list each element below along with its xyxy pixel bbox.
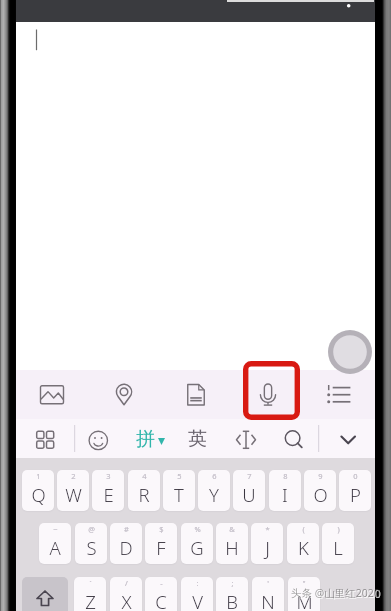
staticText: 4: [142, 471, 147, 481]
staticText: L: [333, 535, 343, 560]
staticText: S: [86, 535, 97, 560]
staticText: G: [190, 535, 204, 560]
button[interactable]: ): [322, 523, 354, 564]
staticText: K: [298, 535, 309, 560]
button[interactable]: (: [287, 523, 319, 564]
button[interactable]: 6: [198, 470, 230, 511]
button[interactable]: 9: [304, 470, 336, 511]
button[interactable]: &: [216, 523, 248, 564]
staticText: ': [267, 578, 269, 588]
staticText: R: [138, 482, 150, 507]
button[interactable]: 5: [163, 470, 195, 511]
staticText: H: [225, 535, 239, 560]
staticText: 英: [188, 427, 207, 451]
staticText: N: [261, 589, 275, 611]
staticText: $: [159, 524, 164, 534]
staticText: 6: [212, 471, 217, 481]
staticText: 头条 @山里红2020: [292, 587, 381, 601]
staticText: 头条 @山里红2020: [291, 586, 380, 600]
staticText: :: [196, 578, 199, 588]
button[interactable]: Insert image: [16, 370, 88, 419]
staticText: #: [124, 524, 129, 534]
staticText: 7: [247, 471, 252, 481]
staticText: D: [119, 535, 133, 560]
staticText: O: [313, 482, 328, 507]
button[interactable]: 1: [22, 470, 54, 511]
staticText: P: [350, 482, 361, 507]
button[interactable]: Shift: [22, 577, 68, 611]
button[interactable]: /: [110, 577, 142, 611]
button[interactable]: Document: [160, 370, 232, 419]
staticText: W: [65, 482, 82, 507]
button[interactable]: 4: [128, 470, 160, 511]
staticText: 0: [353, 471, 358, 481]
button[interactable]: $: [145, 523, 177, 564]
staticText: Z: [85, 589, 96, 611]
staticText: I: [282, 482, 288, 507]
button[interactable]: 7: [233, 470, 265, 511]
staticText: A: [49, 535, 61, 560]
staticText: ;: [231, 578, 234, 588]
button[interactable]: `: [74, 577, 106, 611]
button[interactable]: Voice input: [232, 370, 304, 419]
staticText: 9: [318, 471, 323, 481]
button[interactable]: 3: [92, 470, 124, 511]
button[interactable]: ": [288, 577, 320, 611]
button[interactable]: :: [181, 577, 213, 611]
button[interactable]: 0: [339, 470, 371, 511]
staticText: X: [121, 589, 132, 611]
button[interactable]: ~: [39, 523, 71, 564]
staticText: 5: [177, 471, 182, 481]
staticText: V: [192, 589, 203, 611]
button[interactable]: %: [181, 523, 213, 564]
button[interactable]: ;: [216, 577, 248, 611]
staticText: /: [125, 578, 128, 588]
staticText: (: [302, 524, 305, 534]
button[interactable]: 英: [177, 419, 217, 458]
staticText: ): [337, 524, 340, 534]
button[interactable]: #: [110, 523, 142, 564]
staticText: @: [88, 524, 95, 534]
staticText: -: [160, 578, 163, 588]
staticText: Q: [31, 482, 46, 507]
button[interactable]: Clipboard: [304, 370, 375, 419]
staticText: &: [229, 524, 235, 534]
staticText: F: [156, 535, 166, 560]
staticText: T: [174, 482, 184, 507]
staticText: 3: [106, 471, 111, 481]
staticText: `: [89, 578, 92, 588]
staticText: B: [226, 589, 238, 611]
button[interactable]: ': [252, 577, 284, 611]
button[interactable]: 拼: [123, 419, 177, 458]
staticText: *: [265, 524, 270, 534]
button[interactable]: 2: [57, 470, 89, 511]
staticText: M: [296, 589, 313, 611]
staticText: 8: [283, 471, 288, 481]
staticText: J: [265, 535, 270, 560]
staticText: C: [155, 589, 167, 611]
staticText: 2: [71, 471, 76, 481]
button[interactable]: *: [251, 523, 283, 564]
staticText: %: [194, 524, 201, 534]
staticText: 1: [36, 471, 41, 481]
staticText: E: [103, 482, 114, 507]
staticText: U: [242, 482, 256, 507]
button[interactable]: Voice assistant: [328, 330, 372, 374]
staticText: 拼: [136, 427, 155, 451]
staticText: ~: [53, 524, 58, 534]
button[interactable]: 8: [269, 470, 301, 511]
staticText: ": [302, 578, 306, 588]
button[interactable]: Location: [88, 370, 160, 419]
staticText: Y: [209, 482, 219, 507]
button[interactable]: -: [145, 577, 177, 611]
button[interactable]: @: [75, 523, 107, 564]
